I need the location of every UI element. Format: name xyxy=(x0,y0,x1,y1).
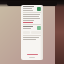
button[interactable]: Verified xyxy=(23,6,41,11)
button[interactable]: Verified xyxy=(37,7,41,11)
button[interactable]: Status xyxy=(37,26,41,30)
button[interactable] xyxy=(23,54,41,55)
button[interactable]: Status xyxy=(23,26,41,30)
button[interactable] xyxy=(23,22,41,23)
